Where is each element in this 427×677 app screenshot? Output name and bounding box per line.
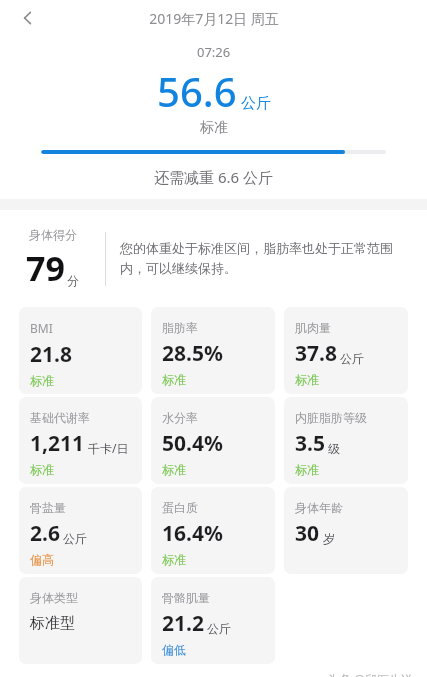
- staticText: 蛋白质: [162, 500, 198, 515]
- staticText: 还需减重 6.6 公斤: [154, 167, 273, 187]
- staticText: 您的体重处于标准区间，脂肪率也处于正常范围内，可以继续保持。: [120, 240, 411, 277]
- staticText: 标准: [30, 462, 54, 477]
- staticText: 标准型: [30, 614, 75, 633]
- button[interactable]: 水分率: [151, 397, 275, 484]
- button[interactable]: 骨盐量: [19, 487, 142, 574]
- button[interactable]: 身体得分: [0, 210, 427, 307]
- staticText: 头条 @邱医生说: [327, 671, 413, 677]
- staticText: 公斤: [207, 621, 231, 636]
- staticText: 偏高: [30, 552, 54, 567]
- staticText: 07:26: [197, 43, 231, 61]
- staticText: 标准: [295, 372, 319, 387]
- staticText: 标准: [162, 552, 186, 567]
- button[interactable]: 基础代谢率: [19, 397, 142, 484]
- staticText: 公斤: [63, 531, 87, 546]
- staticText: 千卡/日: [88, 440, 129, 456]
- staticText: 标准: [295, 462, 319, 477]
- staticText: 骨盐量: [30, 500, 66, 515]
- button[interactable]: 骨骼肌量: [151, 577, 275, 664]
- staticText: 骨骼肌量: [162, 590, 210, 605]
- staticText: 56.6: [157, 64, 237, 118]
- staticText: 标准: [162, 462, 186, 477]
- staticText: 级: [328, 441, 340, 456]
- staticText: 3.5: [295, 429, 325, 458]
- staticText: 标准: [200, 119, 228, 137]
- button[interactable]: 蛋白质: [151, 487, 275, 574]
- staticText: 基础代谢率: [30, 410, 90, 425]
- button[interactable]: 内脏脂肪等级: [284, 397, 408, 484]
- staticText: 37.8: [295, 339, 337, 368]
- staticText: 内脏脂肪等级: [295, 410, 367, 425]
- staticText: 28.5%: [162, 339, 223, 368]
- button[interactable]: 身体年龄: [284, 487, 408, 574]
- staticText: 标准: [162, 372, 186, 387]
- staticText: 30: [295, 519, 320, 548]
- staticText: 2.6: [30, 519, 60, 548]
- staticText: BMI: [30, 320, 53, 336]
- staticText: 脂肪率: [162, 320, 198, 335]
- staticText: 偏低: [162, 642, 186, 657]
- staticText: 肌肉量: [295, 320, 331, 335]
- staticText: 21.2: [162, 609, 204, 638]
- button[interactable]: 身体类型: [19, 577, 142, 664]
- staticText: 21.8: [30, 340, 72, 369]
- staticText: 50.4%: [162, 429, 223, 458]
- staticText: 79: [26, 245, 65, 291]
- staticText: 2019年7月12日 周五: [149, 9, 279, 28]
- staticText: 水分率: [162, 410, 198, 425]
- staticText: 1,211: [30, 429, 85, 458]
- button[interactable]: 肌肉量: [284, 307, 408, 394]
- staticText: 16.4%: [162, 519, 223, 548]
- staticText: 标准: [30, 373, 54, 388]
- button[interactable]: BMI: [19, 307, 142, 394]
- staticText: 分: [67, 273, 79, 288]
- staticText: 岁: [323, 531, 335, 546]
- button[interactable]: 脂肪率: [151, 307, 275, 394]
- staticText: 公斤: [241, 94, 271, 113]
- staticText: 身体年龄: [295, 500, 343, 515]
- staticText: 公斤: [340, 351, 364, 366]
- staticText: 身体类型: [30, 590, 78, 605]
- button[interactable]: Back: [10, 0, 46, 36]
- staticText: 身体得分: [29, 227, 77, 242]
